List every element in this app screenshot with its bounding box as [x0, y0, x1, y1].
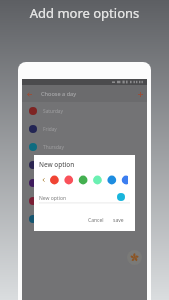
button[interactable]: Choose colour: [34, 174, 128, 186]
staticText: Tuesday: [43, 180, 62, 187]
staticText: Thursday: [43, 144, 64, 151]
button[interactable]: Cancel: [88, 217, 104, 224]
button[interactable]: Saturday: [22, 102, 147, 120]
button[interactable]: save: [113, 217, 124, 224]
button[interactable]: Thursday: [22, 138, 147, 156]
button[interactable]: Back: [22, 87, 36, 101]
staticText: Saturday: [43, 108, 63, 115]
button[interactable]: Friday: [22, 120, 147, 138]
button[interactable]: Monday: [22, 192, 147, 210]
button[interactable]: Tuesday: [22, 174, 147, 192]
staticText: Add more options: [0, 4, 169, 22]
staticText: Friday: [43, 126, 57, 133]
button[interactable]: Add option: [127, 250, 142, 265]
button[interactable]: Sunday: [22, 210, 147, 228]
staticText: Wednesday: [43, 162, 70, 169]
button[interactable]: Add: [133, 87, 147, 101]
staticText: Monday: [43, 198, 62, 205]
staticText: Choose a day: [41, 90, 77, 98]
staticText: New option: [39, 195, 67, 202]
button[interactable]: Wednesday: [22, 156, 147, 174]
staticText: New option: [39, 160, 75, 169]
